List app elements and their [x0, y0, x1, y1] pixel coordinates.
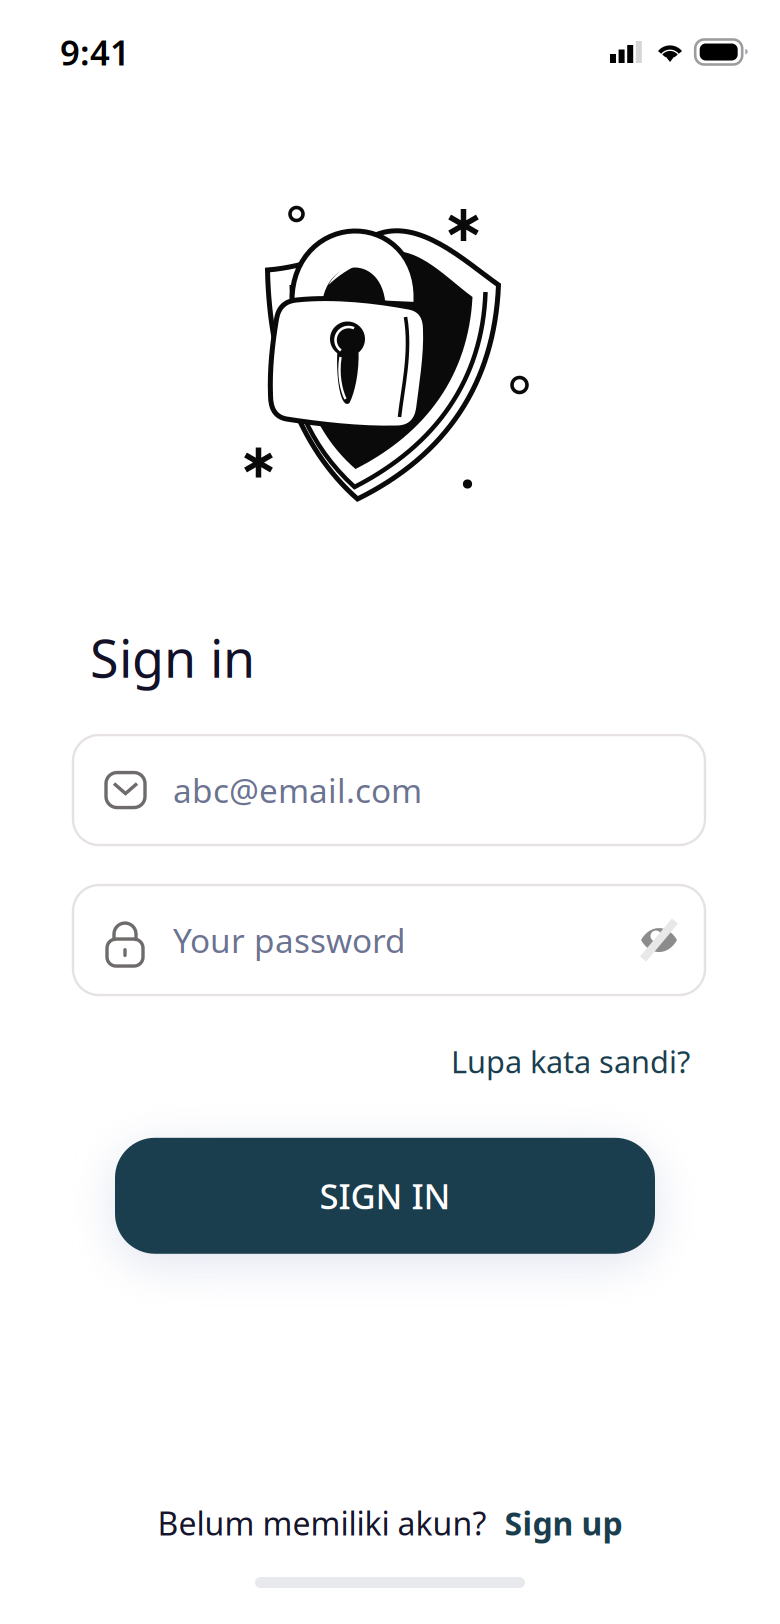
staticText: Your password: [173, 918, 406, 962]
staticText: Sign in: [90, 623, 255, 692]
staticText: SIGN IN: [319, 1173, 450, 1219]
button[interactable]: Lupa kata sandi?: [451, 1041, 690, 1082]
button[interactable]: SIGN IN: [115, 1138, 655, 1254]
button[interactable]: Sign up: [486, 1502, 622, 1544]
staticText: Lupa kata sandi?: [451, 1041, 690, 1082]
staticText: abc@email.com: [173, 768, 422, 812]
staticText: Belum memiliki akun?: [157, 1502, 486, 1544]
staticText: Sign up: [504, 1502, 622, 1544]
staticText: 9:41: [60, 29, 130, 75]
